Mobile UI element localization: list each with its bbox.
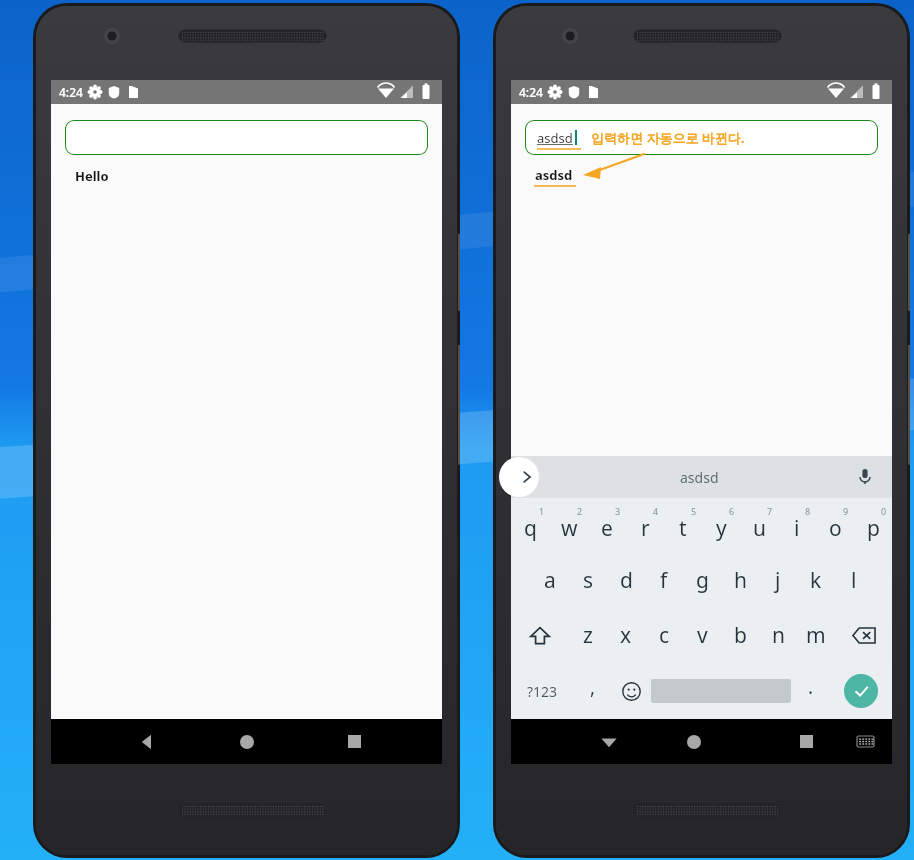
staticText: 4:24 — [519, 84, 543, 100]
staticText: p — [867, 514, 880, 543]
button[interactable]: s — [569, 553, 607, 608]
staticText: h — [734, 566, 747, 595]
button[interactable]: Voice input — [852, 464, 878, 490]
button[interactable]: Hide keyboard — [581, 719, 637, 764]
staticText: 9 — [843, 505, 849, 517]
button[interactable]: n — [759, 608, 797, 663]
staticText: asdsd — [537, 129, 573, 147]
button[interactable]: b — [721, 608, 759, 663]
staticText: k — [810, 566, 822, 595]
staticText: w — [561, 514, 578, 543]
button[interactable]: g — [683, 553, 721, 608]
staticText: s — [583, 566, 594, 595]
button[interactable]: f — [645, 553, 683, 608]
button[interactable]: asdsd — [680, 468, 719, 487]
button[interactable]: ?123 — [511, 663, 573, 719]
button[interactable] — [65, 120, 428, 155]
button[interactable]: u — [740, 498, 778, 553]
button[interactable]: v — [683, 608, 721, 663]
staticText: x — [620, 621, 632, 650]
button[interactable]: j — [759, 553, 797, 608]
staticText: v — [697, 621, 708, 650]
button[interactable]: h — [721, 553, 759, 608]
staticText: t — [679, 514, 687, 543]
button[interactable]: Recents — [778, 719, 834, 764]
staticText: m — [806, 621, 826, 650]
staticText: 입력하면 자동으로 바뀐다. — [591, 129, 745, 147]
staticText: r — [641, 514, 650, 543]
staticText: n — [772, 621, 785, 650]
staticText: d — [620, 566, 633, 595]
button[interactable]: x — [607, 608, 645, 663]
staticText: b — [734, 621, 747, 650]
staticText: y — [716, 514, 727, 543]
staticText: 0 — [881, 505, 887, 517]
staticText: a — [544, 566, 556, 595]
button[interactable]: Home — [219, 719, 275, 764]
staticText: o — [829, 514, 842, 543]
button[interactable]: y — [702, 498, 740, 553]
button[interactable]: Back — [119, 719, 175, 764]
staticText: 2 — [577, 505, 583, 517]
button[interactable]: t — [664, 498, 702, 553]
staticText: Hello — [75, 167, 109, 185]
button[interactable]: k — [797, 553, 835, 608]
staticText: 1 — [539, 505, 545, 517]
button[interactable]: o — [816, 498, 854, 553]
button[interactable]: More suggestions — [499, 457, 539, 497]
staticText: q — [524, 514, 537, 543]
button[interactable]: c — [645, 608, 683, 663]
staticText: ?123 — [527, 682, 558, 701]
button[interactable]: Shift — [511, 608, 569, 663]
button[interactable]: m — [797, 608, 835, 663]
staticText: i — [794, 514, 800, 543]
staticText: c — [659, 621, 670, 650]
staticText: 4:24 — [59, 84, 83, 100]
staticText: , — [590, 674, 596, 700]
button[interactable]: Backspace — [835, 608, 892, 663]
button[interactable]: d — [607, 553, 645, 608]
staticText: 6 — [729, 505, 735, 517]
button[interactable]: p — [854, 498, 892, 553]
button[interactable]: asdsd — [525, 120, 878, 155]
staticText: 5 — [691, 505, 697, 517]
button[interactable]: Done — [830, 663, 892, 719]
staticText: g — [696, 566, 709, 595]
staticText: j — [775, 566, 781, 595]
staticText: e — [601, 514, 613, 543]
button[interactable]: w — [550, 498, 588, 553]
button[interactable]: Recents — [326, 719, 382, 764]
staticText: 7 — [767, 505, 773, 517]
button[interactable]: r — [626, 498, 664, 553]
button[interactable]: Switch keyboard — [843, 719, 887, 764]
button[interactable]: q — [511, 498, 550, 553]
button[interactable]: Emoji — [612, 663, 651, 719]
button[interactable]: i — [778, 498, 816, 553]
staticText: f — [660, 566, 668, 595]
staticText: 3 — [615, 505, 621, 517]
staticText: . — [808, 674, 814, 700]
button[interactable]: . — [791, 663, 830, 719]
staticText: 4 — [653, 505, 659, 517]
staticText: u — [753, 514, 766, 543]
button[interactable]: z — [569, 608, 607, 663]
button[interactable]: , — [573, 663, 612, 719]
staticText: l — [851, 566, 857, 595]
staticText: asdsd — [535, 166, 573, 184]
button[interactable]: Home — [666, 719, 722, 764]
staticText: z — [583, 621, 593, 650]
button[interactable]: e — [588, 498, 626, 553]
button[interactable]: a — [531, 553, 569, 608]
button[interactable]: l — [835, 553, 873, 608]
staticText: 8 — [805, 505, 811, 517]
